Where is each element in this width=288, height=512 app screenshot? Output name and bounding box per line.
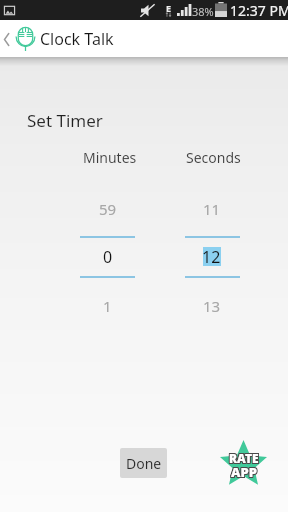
staticText: 12:37 PM [230, 1, 288, 20]
button[interactable]: Rate app [220, 440, 267, 486]
staticText: APP [232, 462, 258, 480]
staticText: RATE [230, 450, 260, 466]
button[interactable]: Back [0, 20, 14, 57]
staticText: 1 [103, 296, 112, 316]
staticText: Done [126, 454, 162, 473]
staticText: APP [230, 464, 256, 482]
staticText: RATE [229, 449, 259, 465]
button[interactable]: 12 [184, 240, 239, 273]
button[interactable]: Done [120, 448, 167, 478]
staticText: 59 [99, 199, 117, 219]
staticText: 38% [192, 4, 214, 19]
staticText: 12 [202, 246, 221, 268]
button[interactable]: 13 [184, 293, 239, 319]
staticText: 11 [203, 199, 221, 219]
staticText: APP [231, 462, 257, 480]
staticText: RATE [230, 449, 260, 465]
staticText: Set Timer [27, 109, 103, 132]
staticText: 0 [103, 246, 113, 268]
staticText: APP [231, 463, 257, 481]
staticText: RATE [228, 450, 258, 466]
staticText: APP [232, 464, 258, 482]
button[interactable]: 11 [184, 196, 239, 222]
button[interactable]: 59 [80, 196, 135, 222]
staticText: APP [232, 463, 258, 481]
staticText: APP [230, 463, 256, 481]
staticText: RATE [229, 450, 259, 466]
staticText: Minutes [83, 148, 137, 167]
staticText: RATE [228, 449, 258, 465]
staticText: APP [230, 462, 256, 480]
staticText: RATE [230, 451, 260, 467]
staticText: Seconds [186, 148, 241, 167]
staticText: Clock Talk [40, 28, 114, 50]
button[interactable]: 0 [80, 240, 135, 273]
staticText: 13 [203, 296, 221, 316]
button[interactable]: 1 [80, 293, 135, 319]
staticText: E [166, 2, 172, 14]
staticText: RATE [229, 451, 259, 467]
staticText: RATE [228, 451, 258, 467]
staticText: APP [231, 464, 257, 482]
